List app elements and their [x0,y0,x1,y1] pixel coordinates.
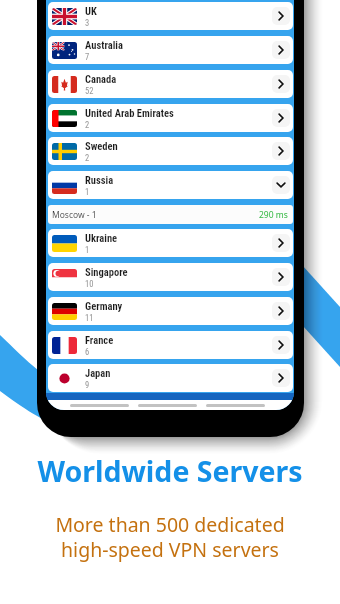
staticText: UK [85,5,97,17]
staticText: Moscow - 1 [52,209,97,221]
button[interactable]: Expand [272,234,290,252]
button[interactable]: France [48,331,293,359]
staticText: 290 ms [259,209,288,221]
staticText: Russia [85,174,114,186]
staticText: Germany [85,300,123,312]
staticText: Worldwide Servers [37,452,303,491]
button[interactable]: Expand [272,142,290,160]
staticText: 2 [85,153,90,163]
button[interactable]: Expand [272,75,290,93]
button[interactable]: Expand [272,268,290,286]
staticText: United Arab Emirates [85,107,174,119]
button[interactable]: United Arab Emirates [48,104,293,132]
button[interactable]: Expand [272,302,290,320]
button[interactable]: Canada [48,70,293,98]
staticText: 1 [85,187,90,197]
staticText: France [85,334,114,346]
button[interactable]: Ukraine [48,229,293,257]
staticText: 3 [85,18,90,28]
staticText: Canada [85,73,117,85]
staticText: Japan [85,367,111,379]
staticText: 9 [85,380,90,390]
button[interactable]: Germany [48,297,293,325]
button[interactable]: Russia [48,171,293,199]
staticText: 10 [85,279,94,289]
staticText: 11 [85,313,94,323]
button[interactable]: Expand [272,7,290,25]
button[interactable]: Japan [48,364,293,392]
staticText: 6 [85,347,90,357]
button[interactable]: Australia [48,36,293,64]
staticText: 1 [85,245,90,255]
staticText: Singapore [85,266,128,278]
button[interactable]: Moscow - 1 [48,205,293,224]
staticText: Ukraine [85,232,118,244]
staticText: Australia [85,39,123,51]
staticText: 2 [85,120,90,130]
staticText: 7 [85,52,90,62]
button[interactable]: Sweden [48,137,293,165]
staticText: More than 500 dedicated high-speed VPN s… [55,511,285,562]
button[interactable]: UK [48,2,293,30]
button[interactable]: Expand [272,369,290,387]
button[interactable]: Singapore [48,263,293,291]
button[interactable]: Expand [272,336,290,354]
button[interactable]: Expand [272,41,290,59]
staticText: 52 [85,86,94,96]
button[interactable]: Collapse [272,176,290,194]
staticText: Sweden [85,140,118,152]
button[interactable]: Expand [272,109,290,127]
